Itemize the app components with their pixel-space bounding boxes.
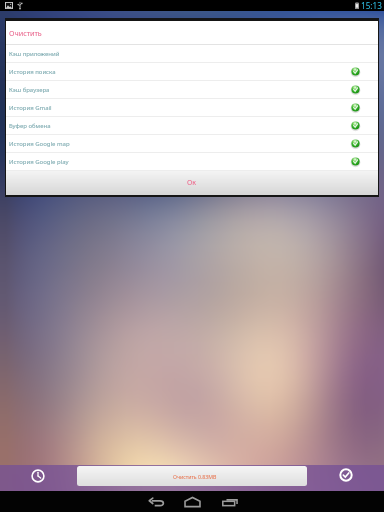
button[interactable]: Выбрать все: [339, 468, 353, 482]
button[interactable]: Кэш браузера: [6, 81, 378, 98]
button[interactable]: История поиска: [6, 63, 378, 80]
staticText: Ок: [187, 178, 197, 188]
button[interactable]: История Gmail: [6, 99, 378, 116]
staticText: История Google map: [9, 140, 333, 148]
button[interactable]: История Google play: [6, 153, 378, 170]
button[interactable]: Очистить 0.83MB: [77, 466, 307, 486]
other: Снимок экрана: [5, 2, 13, 9]
staticText: Очистить: [9, 28, 42, 38]
staticText: 15:13: [361, 0, 382, 11]
button[interactable]: Недавние приложения: [211, 491, 248, 512]
button[interactable]: Буфер обмена: [6, 117, 378, 134]
button[interactable]: Назад: [140, 491, 173, 512]
button[interactable]: Кэш приложений: [6, 45, 378, 62]
staticText: Буфер обмена: [9, 122, 333, 130]
staticText: Очистить 0.83MB: [173, 473, 217, 480]
other: USB подключен: [18, 2, 22, 9]
staticText: История Google play: [9, 158, 333, 166]
staticText: Кэш браузера: [9, 86, 333, 94]
button[interactable]: Главный экран: [173, 491, 211, 512]
staticText: Кэш приложений: [9, 50, 333, 58]
button[interactable]: История Google map: [6, 135, 378, 152]
other: Батарея: [355, 2, 359, 9]
button[interactable]: Ок: [6, 171, 378, 195]
staticText: История поиска: [9, 68, 333, 76]
button[interactable]: История очистки: [31, 469, 45, 483]
staticText: История Gmail: [9, 104, 333, 112]
